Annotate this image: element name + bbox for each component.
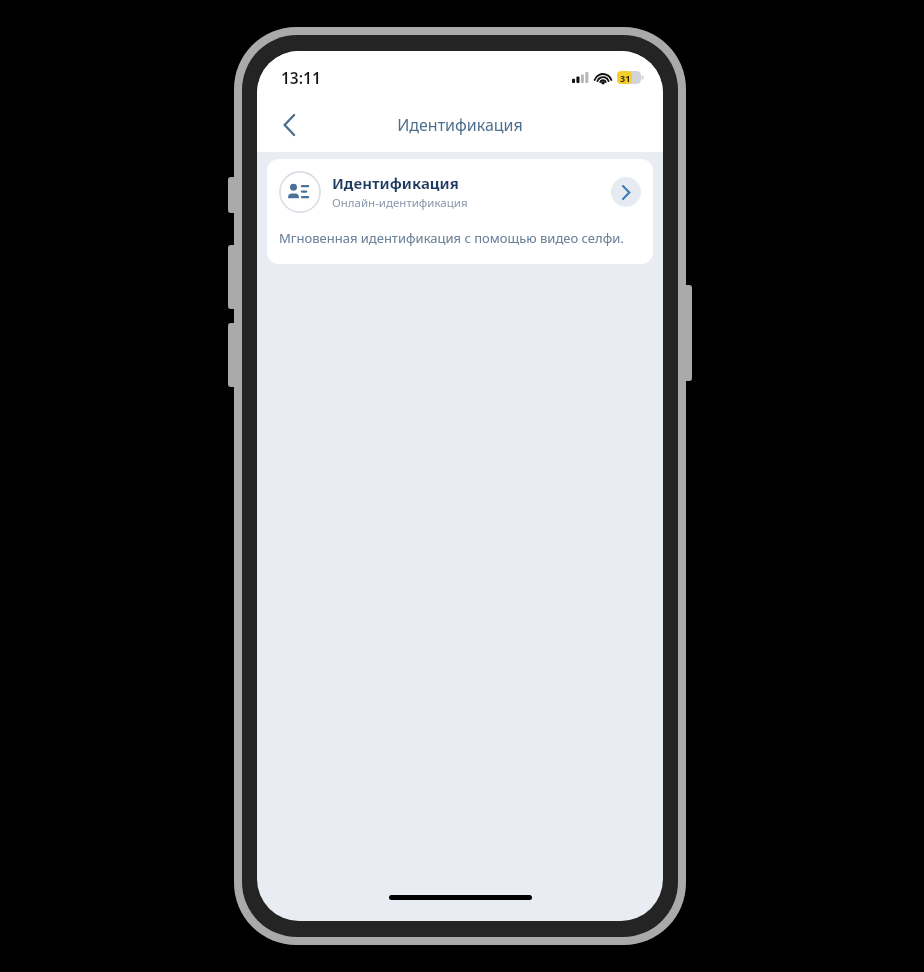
staticText: Онлайн-идентификация bbox=[332, 195, 468, 211]
staticText: Идентификация bbox=[397, 114, 523, 136]
staticText: Идентификация bbox=[332, 173, 459, 193]
staticText: 31 bbox=[620, 72, 631, 84]
staticText: 13:11 bbox=[281, 67, 321, 88]
button[interactable]: Back bbox=[269, 105, 309, 145]
button[interactable]: Идентификация bbox=[267, 159, 653, 217]
staticText: Мгновенная идентификация с помощью видео… bbox=[279, 229, 624, 247]
button[interactable]: Открыть идентификацию bbox=[611, 177, 641, 207]
